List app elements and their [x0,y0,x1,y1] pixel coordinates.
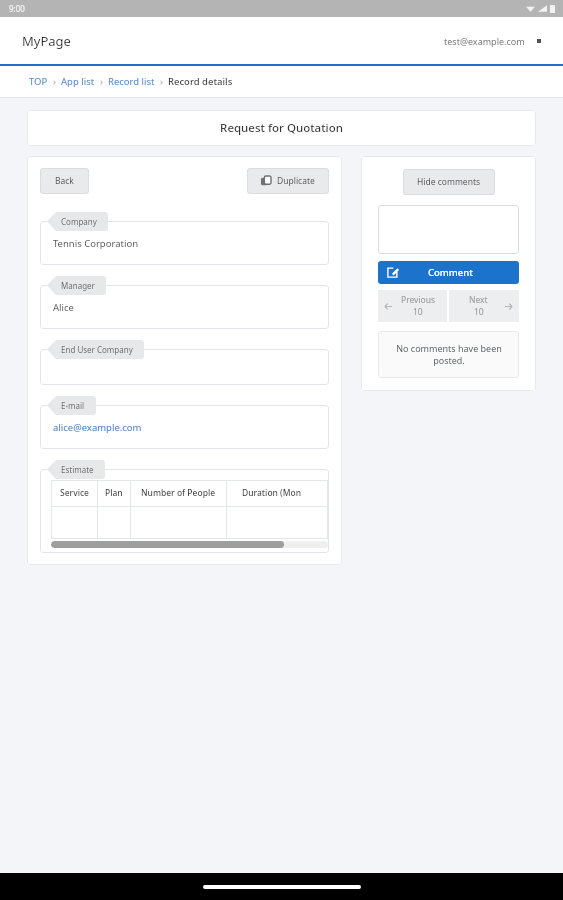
staticText: Previous [401,294,436,306]
staticText: › [95,75,108,88]
staticText: Next [469,294,488,306]
staticText: Back [55,175,74,187]
staticText: Record details [168,75,233,88]
staticText: Company [61,216,97,227]
button[interactable] [378,205,519,254]
button[interactable]: TOP [29,75,48,88]
button[interactable]: Next [449,290,519,322]
staticText: Service [60,487,89,499]
staticText: TOP [29,75,48,88]
staticText: Duration (Mon [242,487,302,499]
button[interactable]: Previous page [378,290,447,322]
staticText: Hide comments [417,176,481,188]
staticText: Duplicate [277,175,315,187]
staticText: No comments have been posted. [396,342,502,367]
staticText: Comment [428,266,473,279]
staticText: E-mail [61,400,85,411]
staticText: › [48,75,61,88]
staticText: alice@example.com [53,421,142,434]
staticText: MyPage [22,32,71,50]
staticText: Plan [105,487,123,499]
staticText: Alice [53,301,74,314]
button[interactable]: Record list [108,75,155,88]
staticText: › [155,75,168,88]
button[interactable]: Back [40,168,89,194]
staticText: Manager [61,280,95,291]
staticText: App list [61,75,95,88]
button[interactable]: Duplicate [247,168,329,194]
staticText: Number of People [141,487,216,499]
staticText: 10 [474,306,484,318]
staticText: End User Company [61,344,133,355]
button[interactable]: App list [61,75,95,88]
button[interactable]: Hide comments [403,169,495,195]
staticText: Request for Quotation [220,120,343,136]
button[interactable]: test@example.com [440,29,545,53]
other: Next page [504,302,513,311]
staticText: test@example.com [444,35,525,47]
button[interactable]: Comment [378,261,519,284]
other: Previous page [384,302,393,311]
staticText: Estimate [61,464,94,475]
staticText: Tennis Corporation [53,237,139,250]
staticText: 9:00 [9,3,25,14]
staticText: 10 [413,306,423,318]
staticText: Record list [108,75,155,88]
